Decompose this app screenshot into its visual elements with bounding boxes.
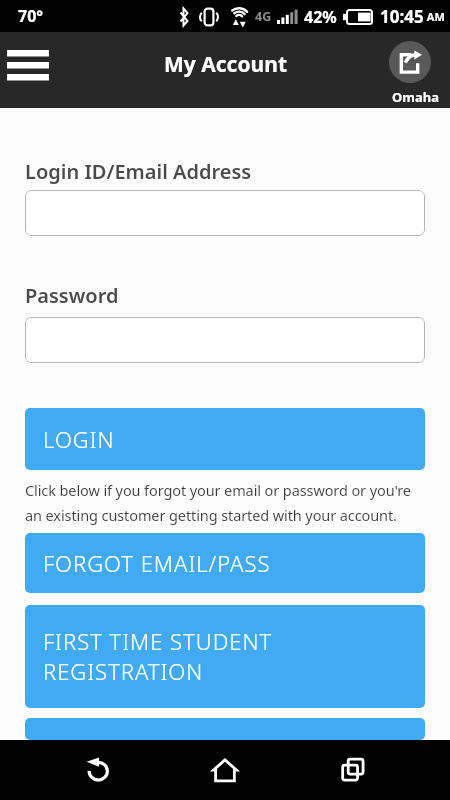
staticText: LOGIN <box>43 424 115 454</box>
staticText: Password <box>25 282 119 309</box>
staticText: Click below if you forgot your email or … <box>25 480 411 525</box>
staticText: My Account <box>164 50 287 79</box>
staticText: FORGOT EMAIL/PASS <box>43 548 271 578</box>
staticText: 4G <box>255 8 272 25</box>
staticText: 10:45 <box>380 5 424 28</box>
button[interactable]: LOGIN <box>25 408 425 470</box>
staticText: AM <box>424 9 445 24</box>
staticText: 42% <box>304 6 337 28</box>
button[interactable]: FORGOT EMAIL/PASS <box>25 533 425 593</box>
button[interactable] <box>323 740 383 800</box>
button[interactable] <box>25 190 425 236</box>
button[interactable] <box>195 740 255 800</box>
button[interactable] <box>25 317 425 363</box>
staticText: 70° <box>18 5 44 27</box>
button[interactable] <box>25 718 425 740</box>
button[interactable] <box>389 41 431 83</box>
staticText: Omaha <box>392 88 439 106</box>
staticText: FIRST TIME STUDENT REGISTRATION <box>43 626 273 687</box>
button[interactable] <box>7 43 53 89</box>
button[interactable]: FIRST TIME STUDENT REGISTRATION <box>25 605 425 708</box>
button[interactable] <box>68 740 128 800</box>
staticText: Login ID/Email Address <box>25 158 252 185</box>
